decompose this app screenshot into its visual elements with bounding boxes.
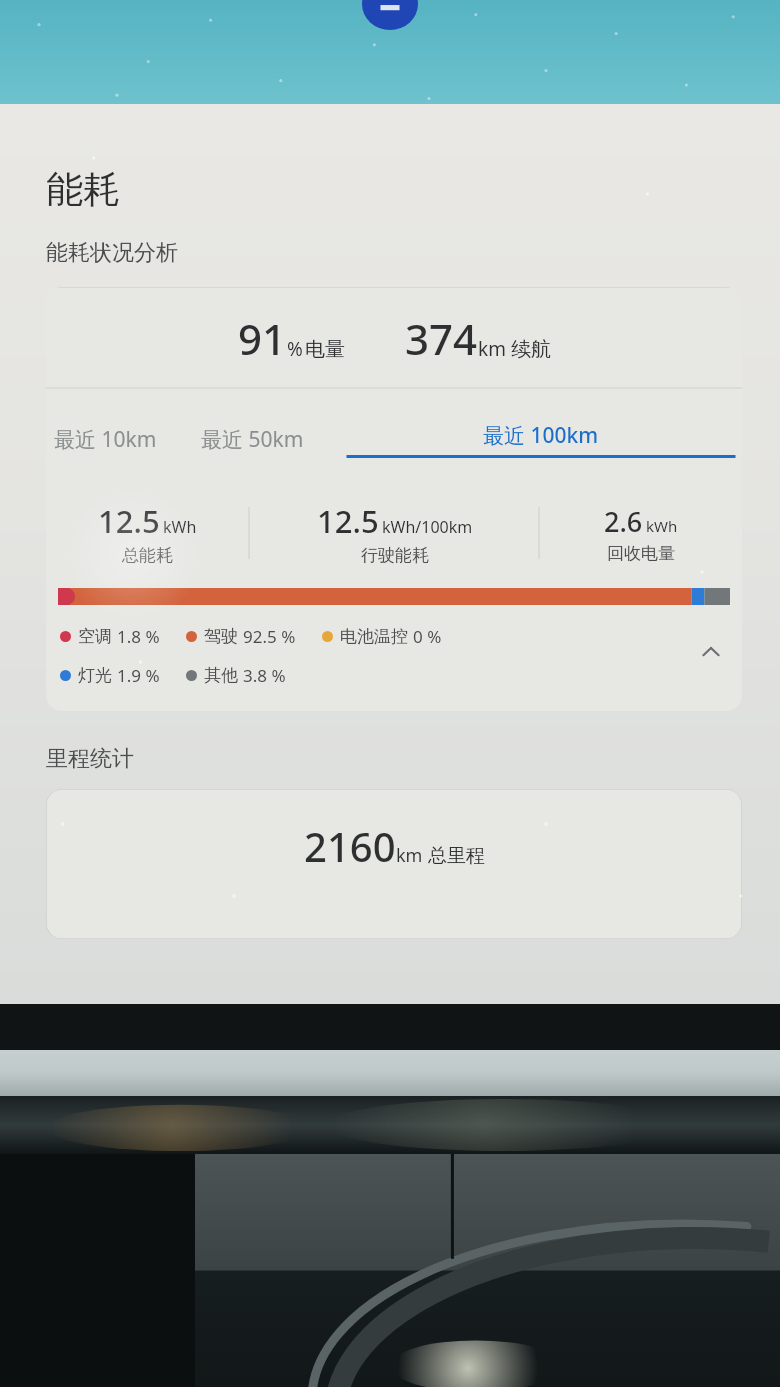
button[interactable]: 其他 bbox=[186, 664, 286, 687]
staticText: 2.6 bbox=[604, 503, 643, 540]
button[interactable]: 最近 10km bbox=[46, 421, 165, 458]
staticText: 0 % bbox=[413, 625, 442, 648]
staticText: 1.8 % bbox=[117, 625, 160, 648]
staticText: 电量 bbox=[305, 337, 345, 362]
staticText: 92.5 % bbox=[243, 625, 296, 648]
staticText: 2160 bbox=[304, 819, 396, 873]
staticText: kWh bbox=[646, 516, 678, 536]
button[interactable]: 2160 bbox=[46, 789, 742, 939]
button[interactable]: 最近 50km bbox=[193, 421, 312, 458]
button[interactable]: 灯光 bbox=[60, 664, 160, 687]
staticText: 驾驶 bbox=[204, 626, 238, 647]
staticText: 最近 100km bbox=[483, 421, 599, 450]
staticText: 里程统计 bbox=[46, 745, 134, 773]
staticText: 最近 10km bbox=[54, 425, 157, 454]
staticText: 12.5 bbox=[317, 500, 379, 542]
staticText: 电池温控 bbox=[340, 626, 408, 647]
staticText: km bbox=[396, 843, 423, 868]
staticText: kWh bbox=[163, 516, 197, 538]
staticText: 其他 bbox=[204, 665, 238, 686]
button[interactable]: 驾驶 bbox=[186, 625, 296, 648]
button[interactable]: Collapse bbox=[694, 635, 728, 669]
staticText: 总里程 bbox=[428, 844, 485, 868]
staticText: 续航 bbox=[511, 337, 551, 362]
button[interactable]: 电池温控 bbox=[322, 625, 442, 648]
staticText: 能耗状况分析 bbox=[46, 239, 178, 267]
staticText: 灯光 bbox=[78, 665, 112, 686]
staticText: 能耗 bbox=[46, 166, 120, 213]
staticText: 空调 bbox=[78, 626, 112, 647]
staticText: 总能耗 bbox=[122, 545, 173, 566]
staticText: 回收电量 bbox=[607, 543, 675, 564]
staticText: km bbox=[478, 336, 506, 362]
staticText: % bbox=[287, 336, 303, 362]
staticText: 行驶能耗 bbox=[361, 545, 429, 566]
staticText: 最近 50km bbox=[201, 425, 304, 454]
staticText: 3.8 % bbox=[243, 664, 286, 687]
staticText: 91 bbox=[238, 310, 287, 367]
staticText: 374 bbox=[405, 310, 478, 367]
staticText: kWh/100km bbox=[382, 516, 473, 538]
button[interactable]: 最近 100km bbox=[340, 417, 742, 462]
button[interactable]: 空调 bbox=[60, 625, 160, 648]
staticText: 1.9 % bbox=[117, 664, 160, 687]
staticText: 12.5 bbox=[98, 500, 160, 542]
